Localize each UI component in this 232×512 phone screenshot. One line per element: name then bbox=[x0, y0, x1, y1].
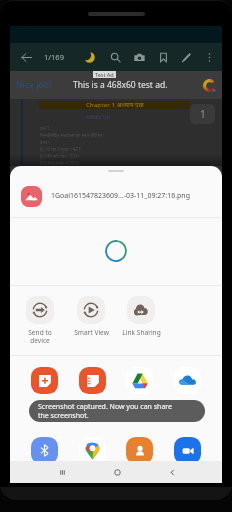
button[interactable]: Night mode bbox=[79, 47, 99, 67]
button[interactable]: OneDrive bbox=[174, 367, 201, 394]
button[interactable]: Smart View bbox=[67, 296, 115, 337]
button[interactable]: Notes bbox=[79, 367, 106, 394]
button[interactable]: Add note bbox=[31, 367, 58, 394]
button[interactable]: 1Goal161547823609...-03-11_09:27:16.png bbox=[10, 179, 222, 213]
button[interactable]: Recents bbox=[51, 461, 73, 483]
staticText: Test Ad bbox=[95, 71, 114, 78]
staticText: Nice job! bbox=[16, 79, 52, 91]
staticText: Chapter 1 अध्याय एक bbox=[86, 101, 144, 109]
button[interactable]: Drive bbox=[126, 367, 153, 394]
staticText: निम्नलिखित संख्याओं को सरल कीजिए : bbox=[40, 132, 105, 138]
staticText: ANNEX 1(a) bbox=[86, 114, 110, 120]
staticText: (ii) तीन सौ एक = 301॰ bbox=[40, 153, 80, 159]
button[interactable]: Screenshot captured. Now you can share t… bbox=[29, 400, 205, 422]
staticText: Send to device bbox=[28, 328, 52, 345]
staticText: 1Goal161547823609...-03-11_09:27:16.png bbox=[51, 191, 190, 201]
button[interactable]: Search bbox=[105, 47, 125, 67]
staticText: उत्तर॰ bbox=[40, 139, 50, 145]
button[interactable]: Bookmark bbox=[153, 47, 173, 67]
button[interactable]: Maps bbox=[79, 437, 106, 464]
staticText: This is a 468x60 test ad. bbox=[73, 79, 168, 91]
button[interactable]: Nice job! bbox=[10, 71, 222, 99]
button[interactable]: Edit bbox=[176, 47, 196, 67]
staticText: 1 bbox=[200, 107, 206, 121]
button[interactable]: Send to device bbox=[16, 296, 64, 345]
button[interactable]: Back bbox=[161, 461, 183, 483]
staticText: 1/169 bbox=[44, 52, 64, 62]
button[interactable]: Duo bbox=[174, 437, 201, 464]
staticText: Link Sharing bbox=[122, 328, 161, 337]
staticText: (i) 10 का 5 गुणा = 427 bbox=[40, 146, 81, 152]
button[interactable]: More options bbox=[199, 47, 219, 67]
staticText: Smart View bbox=[74, 328, 109, 337]
button[interactable]: Contacts bbox=[126, 437, 153, 464]
button[interactable]: Link Sharing bbox=[117, 296, 165, 337]
button[interactable]: Bluetooth bbox=[31, 437, 58, 464]
button[interactable]: 1 bbox=[190, 104, 215, 124]
staticText: Screenshot captured. Now you can share t… bbox=[38, 402, 173, 420]
staticText: (iii) सात हजार = 7000 bbox=[40, 160, 80, 166]
button[interactable]: Camera bbox=[129, 47, 149, 67]
button[interactable]: Back bbox=[16, 47, 36, 67]
staticText: प्रश्न 1. bbox=[40, 125, 51, 131]
button[interactable]: Home bbox=[106, 461, 128, 483]
